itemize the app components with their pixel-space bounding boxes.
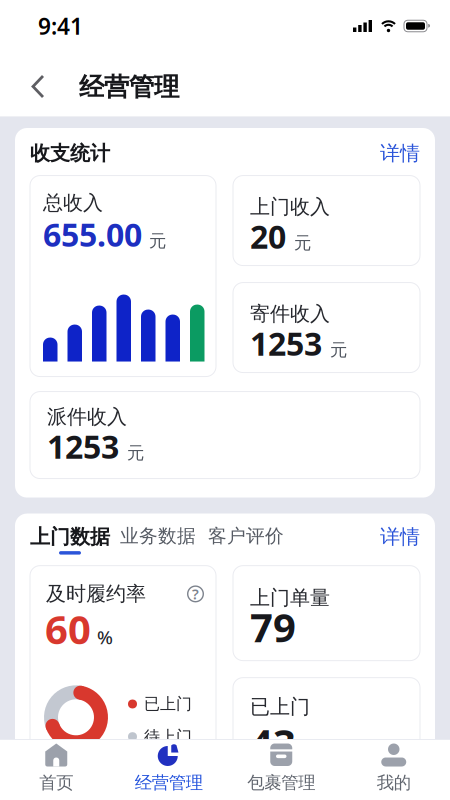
staticText: 1253 — [250, 322, 322, 365]
staticText: 上门数据 — [30, 525, 110, 549]
staticText: 元 — [127, 442, 144, 464]
staticText: 79 — [250, 600, 296, 653]
staticText: 元 — [294, 232, 311, 254]
staticText: 655.00 — [43, 213, 142, 256]
staticText: ? — [192, 584, 199, 604]
staticText: 待上门 — [144, 727, 192, 746]
staticText: 包裹管理 — [247, 772, 315, 793]
staticText: 已上门 — [250, 695, 310, 719]
staticText: 元 — [330, 339, 347, 361]
staticText: 及时履约率 — [46, 582, 146, 606]
button[interactable]: 我的 — [337, 740, 450, 800]
staticText: 我的 — [377, 772, 411, 793]
staticText: 上门收入 — [250, 195, 330, 219]
staticText: 客户评价 — [208, 525, 284, 547]
staticText: 总收入 — [43, 191, 103, 215]
button[interactable]: 上门数据 — [30, 525, 110, 555]
staticText: 上门单量 — [250, 586, 330, 610]
staticText: 详情 — [380, 141, 420, 166]
staticText: 1253 — [47, 425, 119, 468]
staticText: % — [97, 625, 113, 649]
staticText: 寄件收入 — [250, 302, 330, 326]
button[interactable] — [0, 74, 46, 100]
staticText: 60 — [45, 602, 91, 655]
staticText: 9:41 — [38, 11, 83, 41]
button[interactable]: 包裹管理 — [225, 740, 337, 800]
staticText: 详情 — [380, 525, 420, 549]
button[interactable]: 业务数据 — [110, 525, 196, 547]
staticText: 43 — [250, 716, 296, 769]
button[interactable]: 详情 — [380, 525, 420, 549]
staticText: 20 — [250, 215, 286, 258]
button[interactable]: 客户评价 — [196, 525, 284, 547]
staticText: 元 — [149, 230, 166, 252]
staticText: 经营管理 — [135, 772, 203, 793]
staticText: 已上门 — [144, 694, 192, 714]
button[interactable]: ? — [187, 585, 204, 602]
staticText: 经营管理 — [79, 71, 179, 102]
button[interactable]: 首页 — [0, 740, 112, 800]
button[interactable]: 详情 — [380, 141, 420, 166]
staticText: 派件收入 — [47, 405, 127, 429]
staticText: 业务数据 — [120, 525, 196, 547]
staticText: 首页 — [39, 772, 73, 793]
staticText: 收支统计 — [30, 141, 110, 166]
button[interactable]: 经营管理 — [112, 740, 225, 800]
